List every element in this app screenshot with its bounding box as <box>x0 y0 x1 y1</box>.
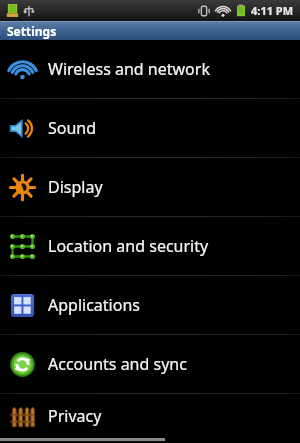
button[interactable]: Sound <box>0 99 300 157</box>
staticText: Privacy <box>48 405 102 427</box>
button[interactable]: Wireless and network <box>0 40 300 98</box>
staticText: Applications <box>48 294 140 316</box>
button[interactable]: Applications <box>0 276 300 334</box>
staticText: Settings <box>7 23 57 39</box>
staticText: Accounts and sync <box>48 353 187 375</box>
staticText: Display <box>48 176 103 198</box>
button[interactable]: Accounts and sync <box>0 335 300 393</box>
button[interactable]: Privacy <box>0 394 300 438</box>
button[interactable]: Display <box>0 158 300 216</box>
staticText: Location and security <box>48 235 209 257</box>
staticText: Sound <box>48 117 97 139</box>
staticText: Wireless and network <box>48 58 210 80</box>
staticText: 4:11 PM <box>251 3 294 18</box>
button[interactable]: Location and security <box>0 217 300 275</box>
